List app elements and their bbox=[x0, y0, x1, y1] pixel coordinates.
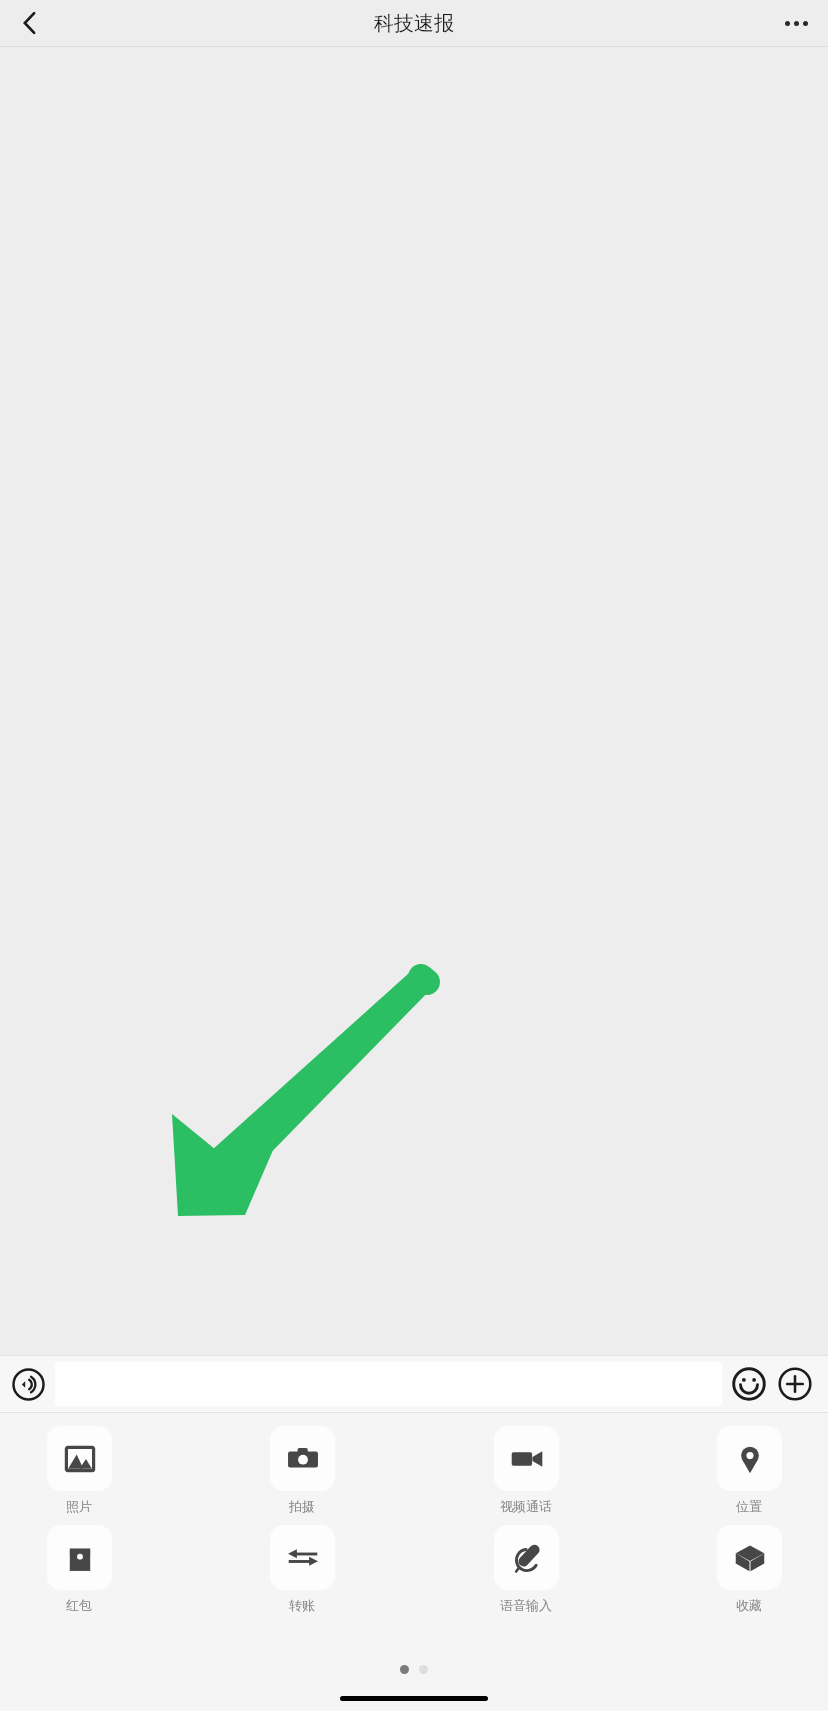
staticText: 收藏 bbox=[736, 1597, 762, 1613]
staticText: 视频通话 bbox=[500, 1498, 552, 1514]
staticText: 语音输入 bbox=[500, 1597, 552, 1613]
button[interactable]: 拍摄 bbox=[237, 1426, 367, 1514]
button[interactable]: Back bbox=[8, 1, 52, 45]
staticText: 位置 bbox=[736, 1498, 762, 1514]
button[interactable]: 视频通话 bbox=[461, 1426, 591, 1514]
button[interactable]: More functions bbox=[772, 1361, 818, 1407]
button[interactable]: 照片 bbox=[14, 1426, 144, 1514]
button[interactable]: Emoji bbox=[726, 1361, 772, 1407]
staticText: 科技速报 bbox=[374, 11, 454, 36]
button[interactable]: More options bbox=[774, 1, 818, 45]
staticText: 照片 bbox=[66, 1498, 92, 1514]
staticText: 拍摄 bbox=[289, 1498, 315, 1514]
staticText: 转账 bbox=[289, 1597, 315, 1613]
button[interactable]: 红包 bbox=[14, 1525, 144, 1613]
button[interactable]: Voice input bbox=[5, 1361, 51, 1407]
button[interactable]: 收藏 bbox=[684, 1525, 814, 1613]
button[interactable]: 位置 bbox=[684, 1426, 814, 1514]
button[interactable]: 转账 bbox=[237, 1525, 367, 1613]
staticText: 红包 bbox=[66, 1597, 92, 1613]
button[interactable]: 语音输入 bbox=[461, 1525, 591, 1613]
